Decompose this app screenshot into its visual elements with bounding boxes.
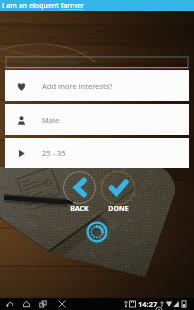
button[interactable]: 25 - 35	[5, 138, 189, 168]
button[interactable]: I am an eloquent farmer	[0, 0, 194, 11]
staticText: Male	[42, 115, 60, 125]
staticText: BACK	[70, 204, 89, 214]
staticText: I am an eloquent farmer	[2, 1, 84, 11]
button[interactable]: Done	[101, 171, 135, 214]
button[interactable]: Male	[5, 104, 189, 135]
staticText: 14:27	[138, 299, 158, 309]
button[interactable]: Back	[62, 171, 96, 214]
button[interactable]: I am an eloquent farmer	[6, 57, 188, 68]
staticText: I am an eloquent farmer	[10, 59, 79, 67]
staticText: Add more interests?	[42, 81, 113, 91]
staticText: DONE	[108, 204, 129, 214]
staticText: 25 - 35	[42, 148, 66, 158]
button[interactable]: Add more interests?	[5, 70, 189, 101]
